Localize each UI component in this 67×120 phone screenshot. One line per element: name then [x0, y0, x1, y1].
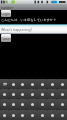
button[interactable]: key 21 [9, 99, 18, 110]
button[interactable]: key 20 [0, 99, 9, 110]
button[interactable]: key 15 [47, 89, 57, 99]
button[interactable]: key 11 [9, 89, 18, 99]
staticText: Tweet [1, 36, 11, 41]
button[interactable]: key 10 [0, 89, 9, 99]
button[interactable]: key 31 [9, 110, 18, 120]
button[interactable]: key 33 [27, 110, 37, 120]
button[interactable]: key 32 [18, 110, 27, 120]
staticText: twitter [1, 5, 14, 10]
button[interactable]: key 25 [47, 99, 57, 110]
staticText: What's happening? [1, 27, 33, 32]
button[interactable]: key 00 [0, 79, 9, 89]
staticText: Login [1, 11, 11, 16]
button[interactable]: Tweet [1, 34, 11, 42]
button[interactable]: key 04 [37, 79, 47, 89]
button[interactable]: key 05 [47, 79, 57, 89]
button[interactable]: key 26 [57, 99, 67, 110]
button[interactable]: key 06 [57, 79, 67, 89]
button[interactable]: Login [1, 10, 11, 17]
button[interactable]: key 02 [18, 79, 27, 89]
button[interactable]: key 22 [18, 99, 27, 110]
button[interactable]: key 16 [57, 89, 67, 99]
button[interactable]: key 34 [37, 110, 47, 120]
button[interactable]: key 12 [18, 89, 27, 99]
button[interactable]: key 03 [27, 79, 37, 89]
button[interactable]: key 14 [37, 89, 47, 99]
button[interactable]: key 30 [0, 110, 9, 120]
button[interactable]: key 35 [47, 110, 57, 120]
button[interactable]: key 13 [27, 89, 37, 99]
button[interactable]: key 24 [37, 99, 47, 110]
button[interactable]: key 23 [27, 99, 37, 110]
button[interactable]: key 01 [9, 79, 18, 89]
staticText: こんにちは、いま何をしていますか？ [1, 18, 57, 22]
button[interactable]: key 36 [57, 110, 67, 120]
